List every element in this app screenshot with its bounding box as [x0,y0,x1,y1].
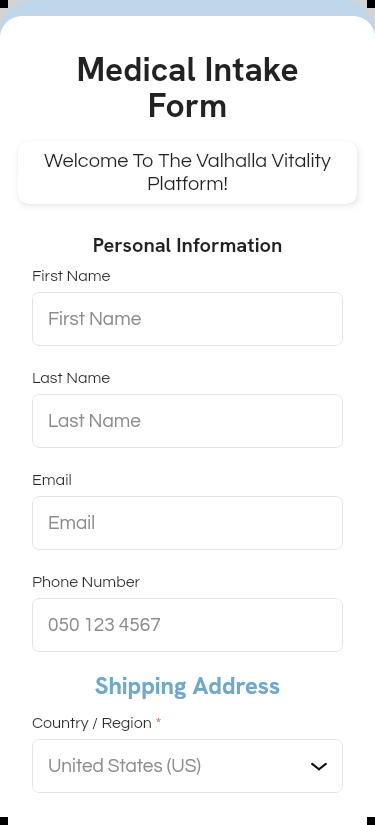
staticText: Country / Region [32,715,152,731]
button[interactable]: First Name [32,292,343,346]
staticText: 050 123 4567 [48,615,161,635]
staticText: Medical Intake Form [40,47,335,128]
staticText: Welcome To The Valhalla Vitality Platfor… [32,151,343,195]
staticText: Email [32,472,72,488]
button[interactable]: United States (US) [32,739,343,793]
staticText: First Name [48,309,142,329]
staticText: Shipping Address [32,670,343,701]
staticText: United States (US) [48,756,201,776]
staticText: Phone Number [32,574,141,590]
staticText: * [152,715,162,731]
staticText: Personal Information [0,232,375,258]
staticText: Last Name [48,411,141,431]
staticText: First Name [32,268,111,284]
button[interactable]: Last Name [32,394,343,448]
button[interactable]: 050 123 4567 [32,598,343,652]
other: Open country dropdown [310,757,328,775]
staticText: Last Name [32,370,111,386]
staticText: Email [48,513,96,533]
button[interactable]: Email [32,496,343,550]
